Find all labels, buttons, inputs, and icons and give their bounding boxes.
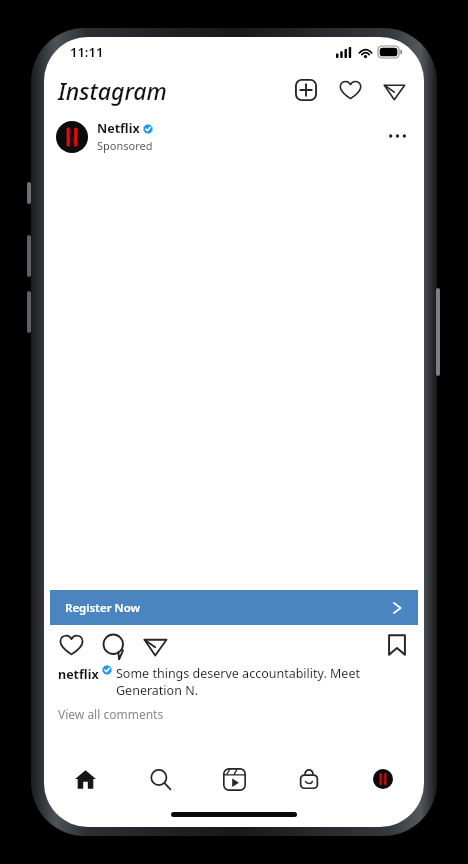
staticText: 11:11 — [70, 43, 104, 61]
button[interactable]: Reels — [205, 759, 263, 799]
button[interactable]: Search — [131, 759, 189, 799]
button[interactable]: Comment — [96, 628, 130, 662]
button[interactable]: New post — [290, 74, 322, 106]
button[interactable]: Register Now — [50, 590, 418, 625]
button[interactable]: Netflix — [56, 120, 153, 153]
button[interactable]: Share — [138, 628, 172, 662]
staticText: Some things deserve accountability. Meet… — [116, 665, 410, 699]
button[interactable]: Profile — [354, 759, 412, 799]
button[interactable]: Save — [380, 628, 414, 662]
staticText: netflix — [58, 666, 99, 683]
staticText: Netflix — [97, 120, 140, 137]
button[interactable]: Messages — [378, 74, 410, 106]
staticText: Sponsored — [97, 138, 153, 153]
staticText: Instagram — [58, 75, 167, 106]
button[interactable]: Home — [56, 759, 114, 799]
staticText: Register Now — [65, 600, 141, 616]
button[interactable]: Like — [54, 628, 88, 662]
button[interactable]: View all comments — [58, 706, 164, 722]
button[interactable]: More options — [382, 121, 412, 151]
button[interactable]: Shop — [280, 759, 338, 799]
button[interactable]: Activity — [334, 74, 366, 106]
